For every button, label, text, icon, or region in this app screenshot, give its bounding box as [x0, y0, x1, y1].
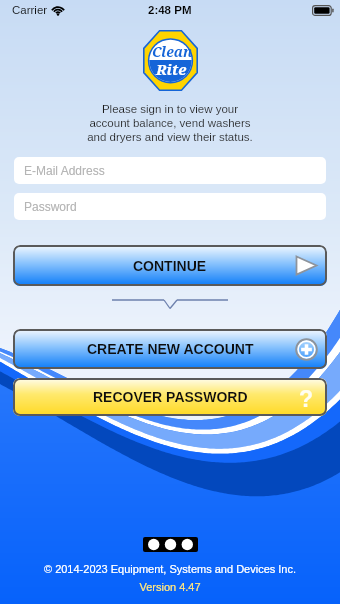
staticText: Carrier: [12, 4, 48, 17]
button[interactable]: CREATE NEW ACCOUNT: [13, 329, 327, 369]
staticText: © 2014-2023 Equipment, Systems and Devic…: [0, 563, 340, 575]
button[interactable]: RECOVER PASSWORD: [13, 378, 327, 416]
staticText: RECOVER PASSWORD: [93, 389, 248, 405]
staticText: 2:48 PM: [148, 4, 192, 17]
staticText: CONTINUE: [133, 258, 207, 274]
other: Recover password: [295, 386, 318, 409]
other: Continue: [295, 255, 318, 276]
staticText: Version 4.47: [0, 581, 340, 593]
button[interactable]: CONTINUE: [13, 245, 327, 286]
staticText: Please sign in to view your account bala…: [0, 103, 340, 143]
staticText: Rite: [156, 59, 187, 79]
button[interactable]: E-Mail Address: [14, 157, 326, 184]
staticText: ?: [299, 386, 314, 409]
staticText: Password: [24, 200, 77, 213]
staticText: E-Mail Address: [24, 164, 105, 177]
button[interactable]: Password: [14, 193, 326, 220]
other: Create new account: [295, 338, 318, 361]
staticText: Clean: [152, 42, 193, 61]
staticText: CREATE NEW ACCOUNT: [87, 341, 254, 357]
